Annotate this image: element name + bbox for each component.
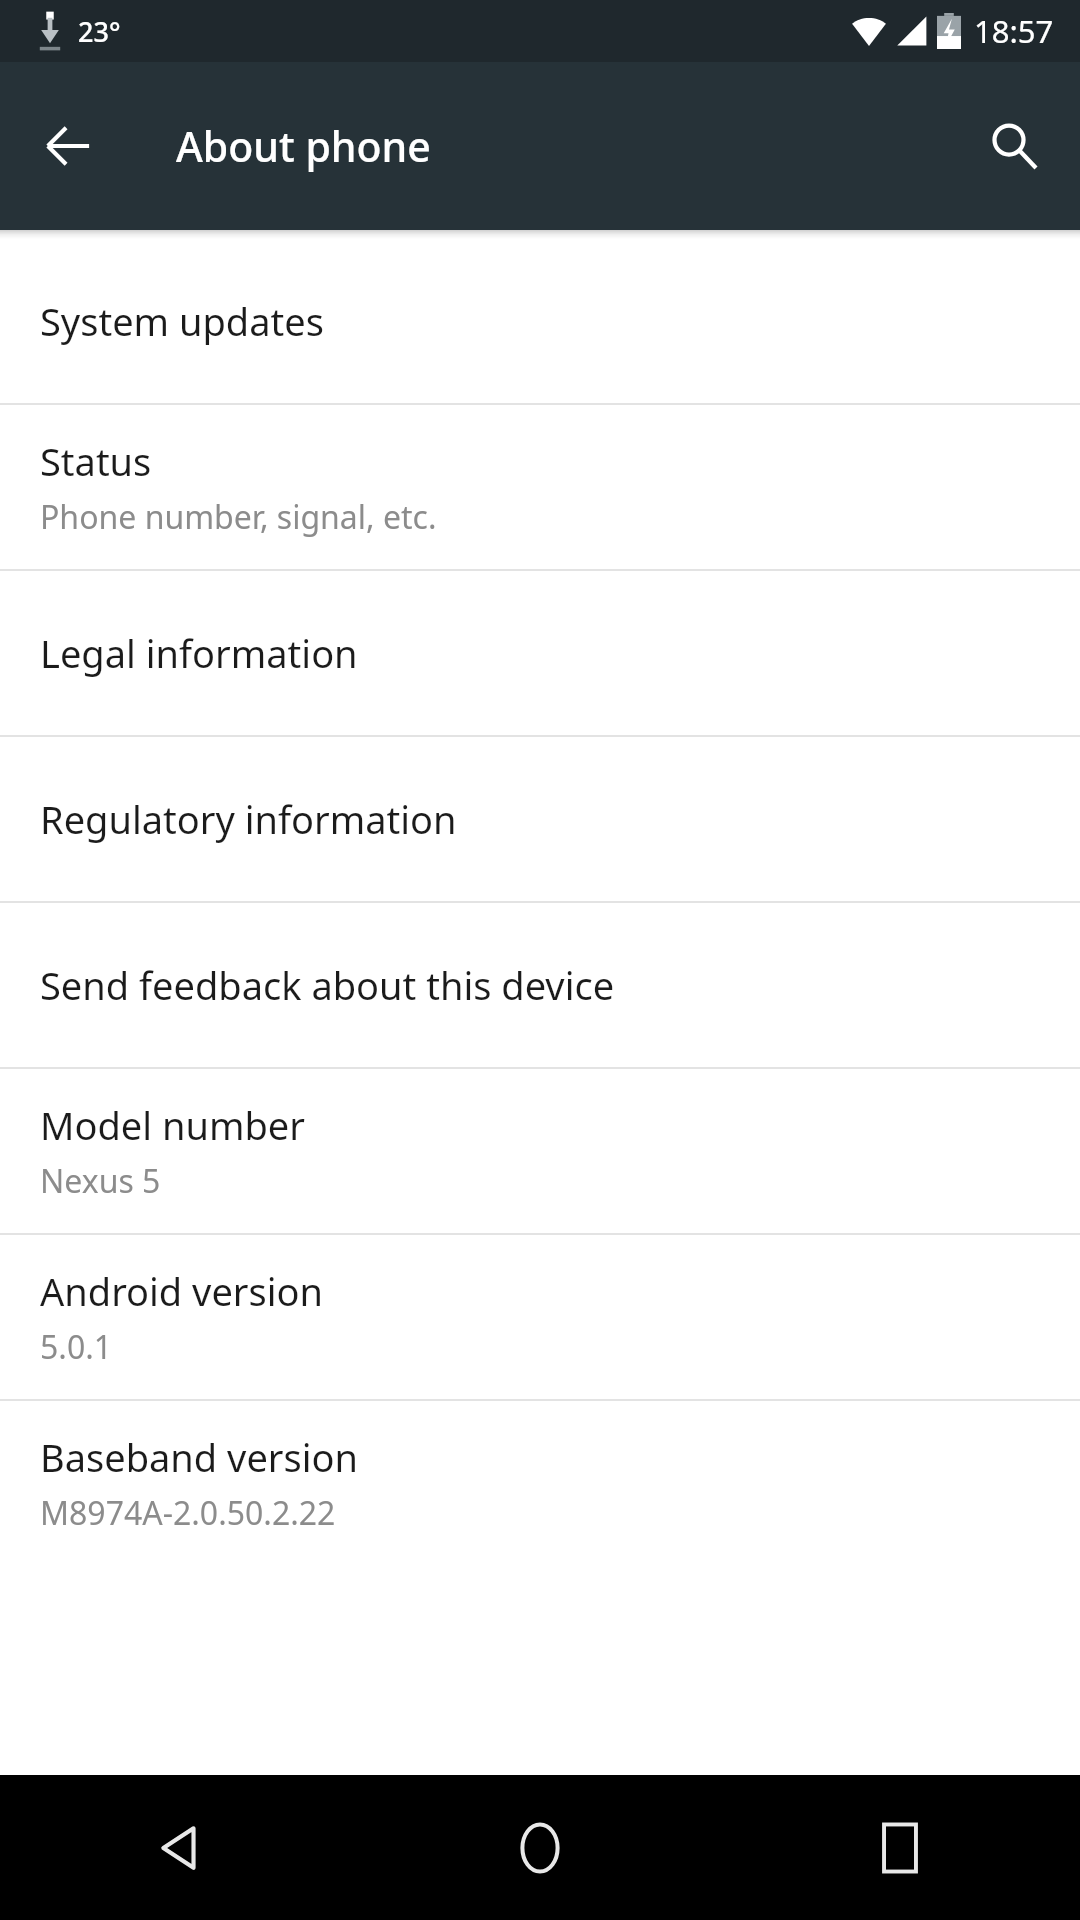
staticText: Status xyxy=(40,435,152,487)
button[interactable]: Back xyxy=(20,98,116,194)
button[interactable]: Baseband version xyxy=(0,1401,1080,1565)
button[interactable]: Send feedback about this device xyxy=(0,903,1080,1067)
staticText: Phone number, signal, etc. xyxy=(40,495,437,539)
staticText: System updates xyxy=(40,295,324,347)
button[interactable]: System updates xyxy=(0,239,1080,403)
staticText: Send feedback about this device xyxy=(40,959,615,1011)
staticText: About phone xyxy=(176,118,431,174)
staticText: Android version xyxy=(40,1265,324,1317)
staticText: 23° xyxy=(78,13,121,50)
button[interactable]: Home xyxy=(360,1775,720,1920)
staticText: Nexus 5 xyxy=(40,1159,161,1203)
staticText: Legal information xyxy=(40,627,358,679)
button[interactable]: Legal information xyxy=(0,571,1080,735)
button[interactable]: Regulatory information xyxy=(0,737,1080,901)
staticText: M8974A-2.0.50.2.22 xyxy=(40,1491,336,1535)
button[interactable]: Search xyxy=(966,98,1062,194)
button[interactable]: Status xyxy=(0,405,1080,569)
staticText: Model number xyxy=(40,1099,305,1151)
button[interactable]: Back xyxy=(0,1775,360,1920)
button[interactable]: Recent apps xyxy=(720,1775,1080,1920)
staticText: Baseband version xyxy=(40,1431,358,1483)
button[interactable]: Model number xyxy=(0,1069,1080,1233)
button[interactable]: Android version xyxy=(0,1235,1080,1399)
staticText: 5.0.1 xyxy=(40,1325,113,1369)
staticText: 18:57 xyxy=(974,10,1054,52)
staticText: Regulatory information xyxy=(40,793,457,845)
